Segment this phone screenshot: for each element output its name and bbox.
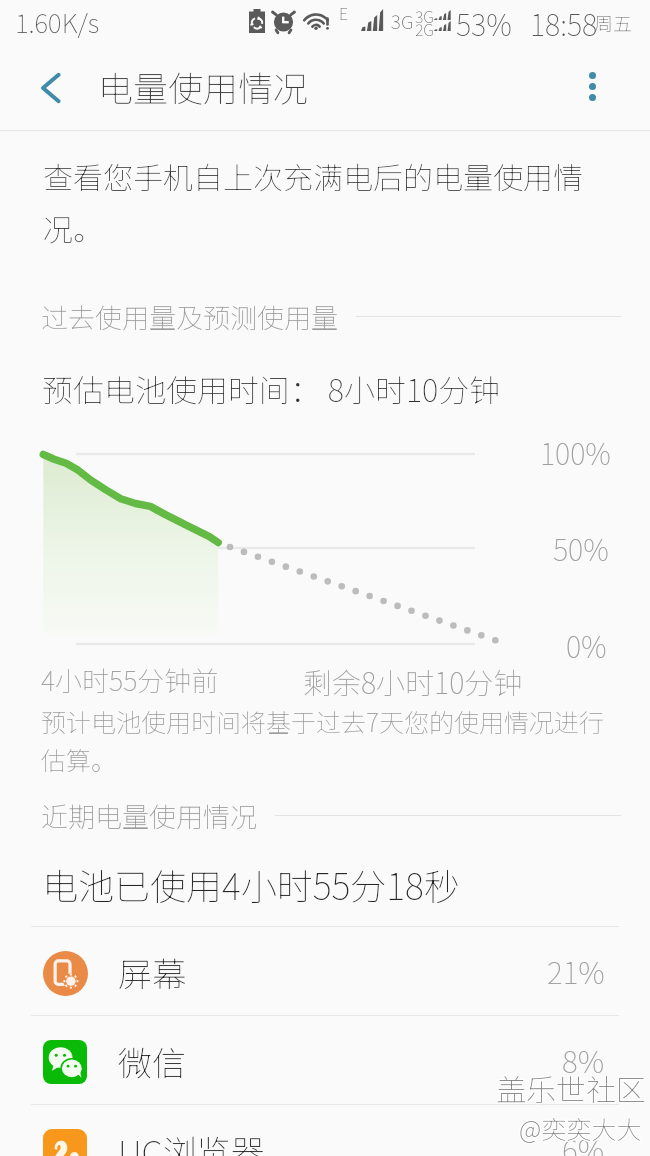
staticText: 剩余8小时10分钟 [303, 660, 523, 702]
staticText: @奕奕大大 [520, 1111, 643, 1147]
button[interactable]: UC浏览器 [0, 1105, 650, 1156]
staticText: 电池已使用4小时55分18秒 [42, 858, 460, 910]
staticText: 盖乐世社区 [497, 1066, 647, 1109]
button[interactable]: More options [564, 58, 620, 114]
staticText: 周五 [594, 9, 633, 37]
staticText: 电量使用情况 [98, 61, 309, 112]
button[interactable]: 屏幕 [0, 927, 650, 1015]
staticText: 预计电池使用时间将基于过去7天您的使用情况进行估算。 [41, 703, 619, 778]
staticText: 0% [566, 624, 607, 666]
staticText: 盖乐世社区 [495, 1066, 645, 1109]
staticText: @奕奕大大 [519, 1110, 642, 1146]
staticText: 3G [415, 4, 434, 27]
staticText: 过去使用量及预测使用量 [41, 297, 338, 336]
staticText: 盖乐世社区 [496, 1066, 646, 1109]
staticText: 盖乐世社区 [497, 1067, 647, 1110]
staticText: E [339, 1, 348, 24]
staticText: @奕奕大大 [519, 1111, 642, 1147]
staticText: UC浏览器 [118, 1126, 265, 1156]
staticText: 53% [456, 2, 512, 44]
staticText: 50% [553, 527, 609, 569]
staticText: @奕奕大大 [520, 1110, 643, 1146]
staticText: 100% [540, 431, 611, 473]
staticText: 8% [562, 1038, 605, 1081]
staticText: @奕奕大大 [518, 1111, 641, 1147]
staticText: 21% [547, 949, 605, 992]
staticText: 1.60K/s [15, 3, 100, 41]
staticText: @奕奕大大 [520, 1109, 643, 1145]
staticText: 盖乐世社区 [496, 1067, 646, 1110]
staticText: @奕奕大大 [518, 1110, 641, 1146]
button[interactable]: 微信 [0, 1016, 650, 1104]
staticText: 查看您手机自上次充满电后的电量使用情况。 [43, 154, 587, 249]
staticText: @奕奕大大 [518, 1109, 641, 1145]
staticText: @奕奕大大 [519, 1109, 642, 1145]
staticText: 3G [391, 7, 414, 35]
staticText: 屏幕 [118, 948, 186, 997]
staticText: 盖乐世社区 [495, 1065, 645, 1108]
button[interactable]: Back [20, 59, 78, 117]
staticText: 盖乐世社区 [497, 1065, 647, 1108]
staticText: 4小时55分钟前 [41, 660, 219, 699]
staticText: 盖乐世社区 [495, 1067, 645, 1110]
staticText: 18:58 [530, 2, 598, 44]
staticText: 预估电池使用时间： 8小时10分钟 [42, 366, 501, 411]
staticText: 近期电量使用情况 [41, 796, 257, 835]
staticText: 2G [415, 17, 434, 40]
staticText: 盖乐世社区 [496, 1065, 646, 1108]
staticText: 6% [562, 1127, 605, 1156]
staticText: 微信 [118, 1037, 186, 1086]
